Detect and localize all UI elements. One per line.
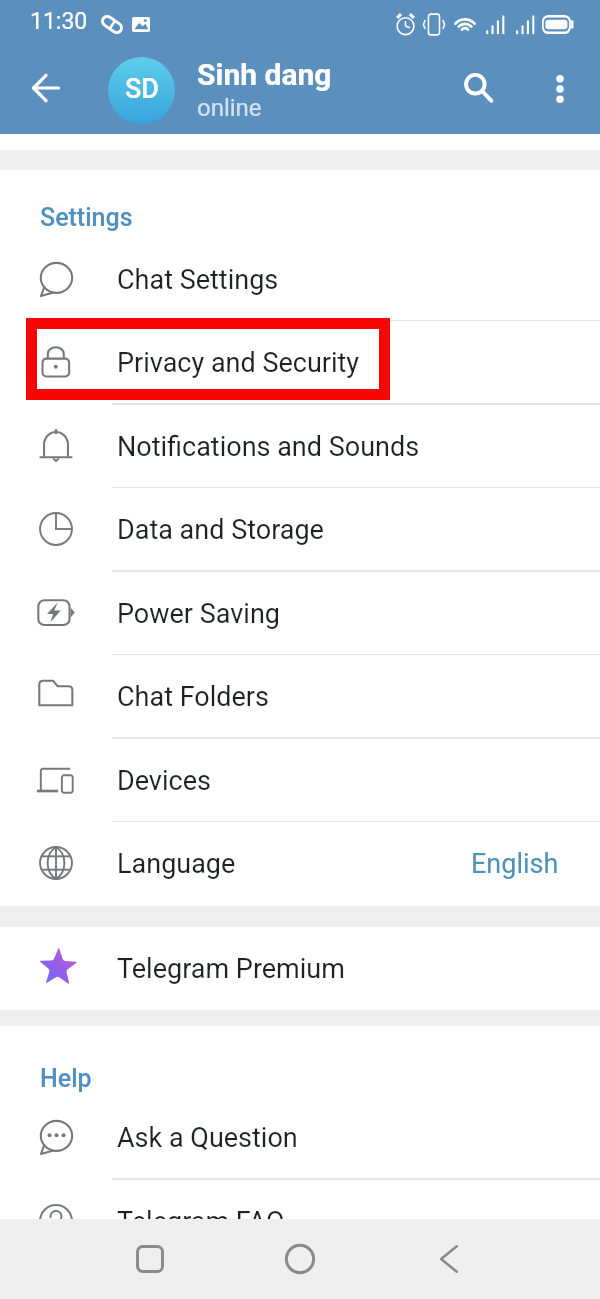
staticText: Sinh dang xyxy=(197,57,332,92)
button[interactable]: Language xyxy=(0,822,600,906)
button[interactable]: Search xyxy=(451,61,507,117)
button[interactable]: More options xyxy=(532,62,588,118)
staticText: 11:30 xyxy=(30,8,88,35)
button[interactable]: Power Saving xyxy=(0,572,600,656)
button[interactable]: Telegram FAQ xyxy=(0,1180,600,1264)
staticText: Devices xyxy=(117,765,211,797)
staticText: Privacy and Security xyxy=(117,347,360,379)
button[interactable]: Ask a Question xyxy=(0,1096,600,1180)
staticText: online xyxy=(197,94,262,122)
staticText: Power Saving xyxy=(117,598,280,630)
button[interactable]: Back xyxy=(18,60,74,116)
staticText: Settings xyxy=(40,203,133,232)
staticText: Telegram FAQ xyxy=(117,1206,285,1238)
button[interactable]: Home xyxy=(270,1219,330,1299)
staticText: Help xyxy=(40,1064,92,1093)
staticText: Notifications and Sounds xyxy=(117,431,420,463)
staticText: English xyxy=(471,848,559,880)
button[interactable]: Recent apps xyxy=(120,1219,180,1299)
button[interactable]: Data and Storage xyxy=(0,488,600,572)
button[interactable]: Back xyxy=(420,1219,480,1299)
staticText: Chat Folders xyxy=(117,681,269,713)
button[interactable]: Chat Settings xyxy=(0,238,600,322)
staticText: Data and Storage xyxy=(117,514,324,546)
staticText: Language xyxy=(117,848,236,880)
staticText: Chat Settings xyxy=(117,264,279,296)
button[interactable]: Telegram Premium xyxy=(0,927,600,1011)
button[interactable]: Privacy and Security xyxy=(0,321,600,405)
staticText: Telegram Premium xyxy=(117,953,345,985)
staticText: SD xyxy=(125,73,159,105)
staticText: Ask a Question xyxy=(117,1122,298,1154)
button[interactable]: Devices xyxy=(0,739,600,823)
button[interactable]: Notifications and Sounds xyxy=(0,405,600,489)
button[interactable]: Chat Folders xyxy=(0,655,600,739)
